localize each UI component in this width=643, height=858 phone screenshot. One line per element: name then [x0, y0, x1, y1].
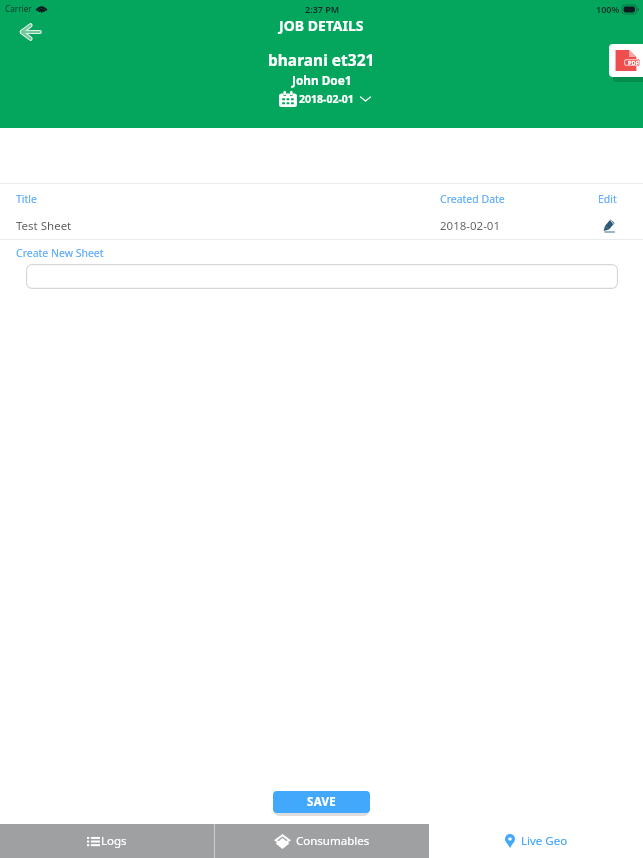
button[interactable]: Test Sheet	[0, 212, 643, 239]
staticText: Create New Sheet	[16, 246, 104, 260]
button[interactable]: Edit	[595, 212, 625, 239]
staticText: PDF	[628, 59, 639, 66]
staticText: Carrier	[5, 3, 32, 14]
staticText: Consumables	[296, 833, 370, 849]
staticText: 100%	[596, 3, 620, 15]
staticText: Edit	[598, 192, 617, 206]
staticText: Title	[16, 192, 37, 206]
button[interactable]: SAVE	[273, 791, 370, 813]
button[interactable]: Back	[9, 12, 51, 51]
button[interactable]: Logs	[0, 824, 214, 858]
staticText: Logs	[101, 833, 127, 849]
staticText: SAVE	[307, 794, 336, 810]
staticText: John Doe1	[292, 72, 352, 88]
staticText: Test Sheet	[16, 218, 72, 234]
staticText: 2018-02-01	[299, 92, 354, 106]
button[interactable]: 2018-02-01	[279, 91, 372, 107]
staticText: JOB DETAILS	[279, 16, 364, 35]
staticText: 2:37 PM	[305, 3, 340, 15]
staticText: 2018-02-01	[440, 218, 501, 234]
button[interactable]: Consumables	[215, 824, 429, 858]
staticText: Live Geo	[521, 833, 568, 849]
button[interactable]: Download PDF	[609, 44, 643, 77]
staticText: Created Date	[440, 192, 505, 206]
button[interactable]: Live Geo	[429, 824, 643, 858]
staticText: bharani et321	[268, 49, 375, 70]
